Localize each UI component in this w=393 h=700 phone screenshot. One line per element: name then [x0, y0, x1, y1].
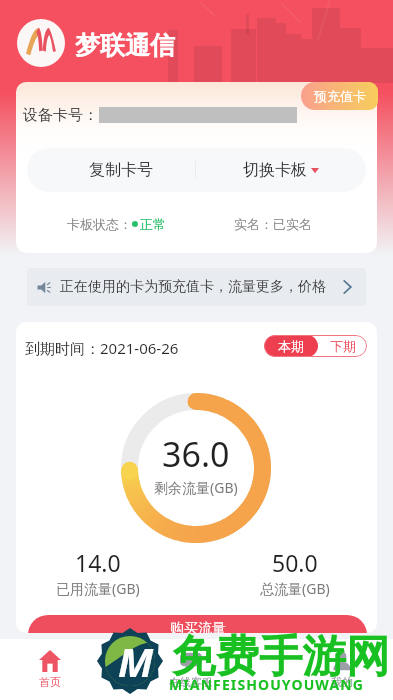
staticText: 剩余流量(GB): [154, 478, 238, 497]
staticText: 已用流量(GB): [56, 579, 140, 598]
button[interactable]: 我的: [310, 639, 374, 700]
staticText: 50.0: [272, 547, 318, 578]
staticText: 首页: [39, 675, 61, 689]
button[interactable]: 首页: [18, 639, 82, 700]
button[interactable]: 购买流量: [28, 615, 367, 633]
staticText: 切换卡板: [243, 160, 307, 180]
staticText: 14.0: [75, 547, 121, 578]
button[interactable]: 下期: [318, 335, 367, 357]
staticText: M: [118, 634, 154, 688]
button[interactable]: 切换卡板: [196, 148, 366, 192]
staticText: 免费手游网: [172, 629, 390, 684]
staticText: 本期: [278, 338, 304, 354]
staticText: 到期时间：2021-06-26: [25, 338, 179, 358]
staticText: 实名：已实名: [234, 216, 312, 232]
staticText: 卡板状态：: [67, 216, 132, 232]
staticText: 总流量(GB): [260, 579, 330, 598]
staticText: 正常: [140, 216, 166, 232]
button[interactable]: 本期: [264, 335, 318, 357]
other: Logo: [17, 19, 65, 67]
button[interactable]: 正在使用的卡为预充值卡，流量更多，价格: [27, 268, 366, 306]
staticText: 梦联通信: [75, 30, 175, 61]
staticText: 在线客服: [169, 675, 213, 689]
staticText: 下期: [330, 338, 356, 354]
staticText: 复制卡号: [89, 160, 153, 180]
staticText: 购买流量: [170, 620, 226, 633]
staticText: 36.0: [162, 431, 230, 477]
staticText: 我的: [331, 675, 353, 689]
button[interactable]: 在线客服: [159, 639, 223, 700]
staticText: 设备卡号：: [23, 106, 98, 125]
staticText: MIANFEISHOUYOUWANG: [169, 675, 364, 694]
button[interactable]: 复制卡号: [27, 148, 195, 192]
staticText: 预充值卡: [314, 88, 366, 104]
staticText: 正在使用的卡为预充值卡，流量更多，价格: [60, 278, 326, 296]
